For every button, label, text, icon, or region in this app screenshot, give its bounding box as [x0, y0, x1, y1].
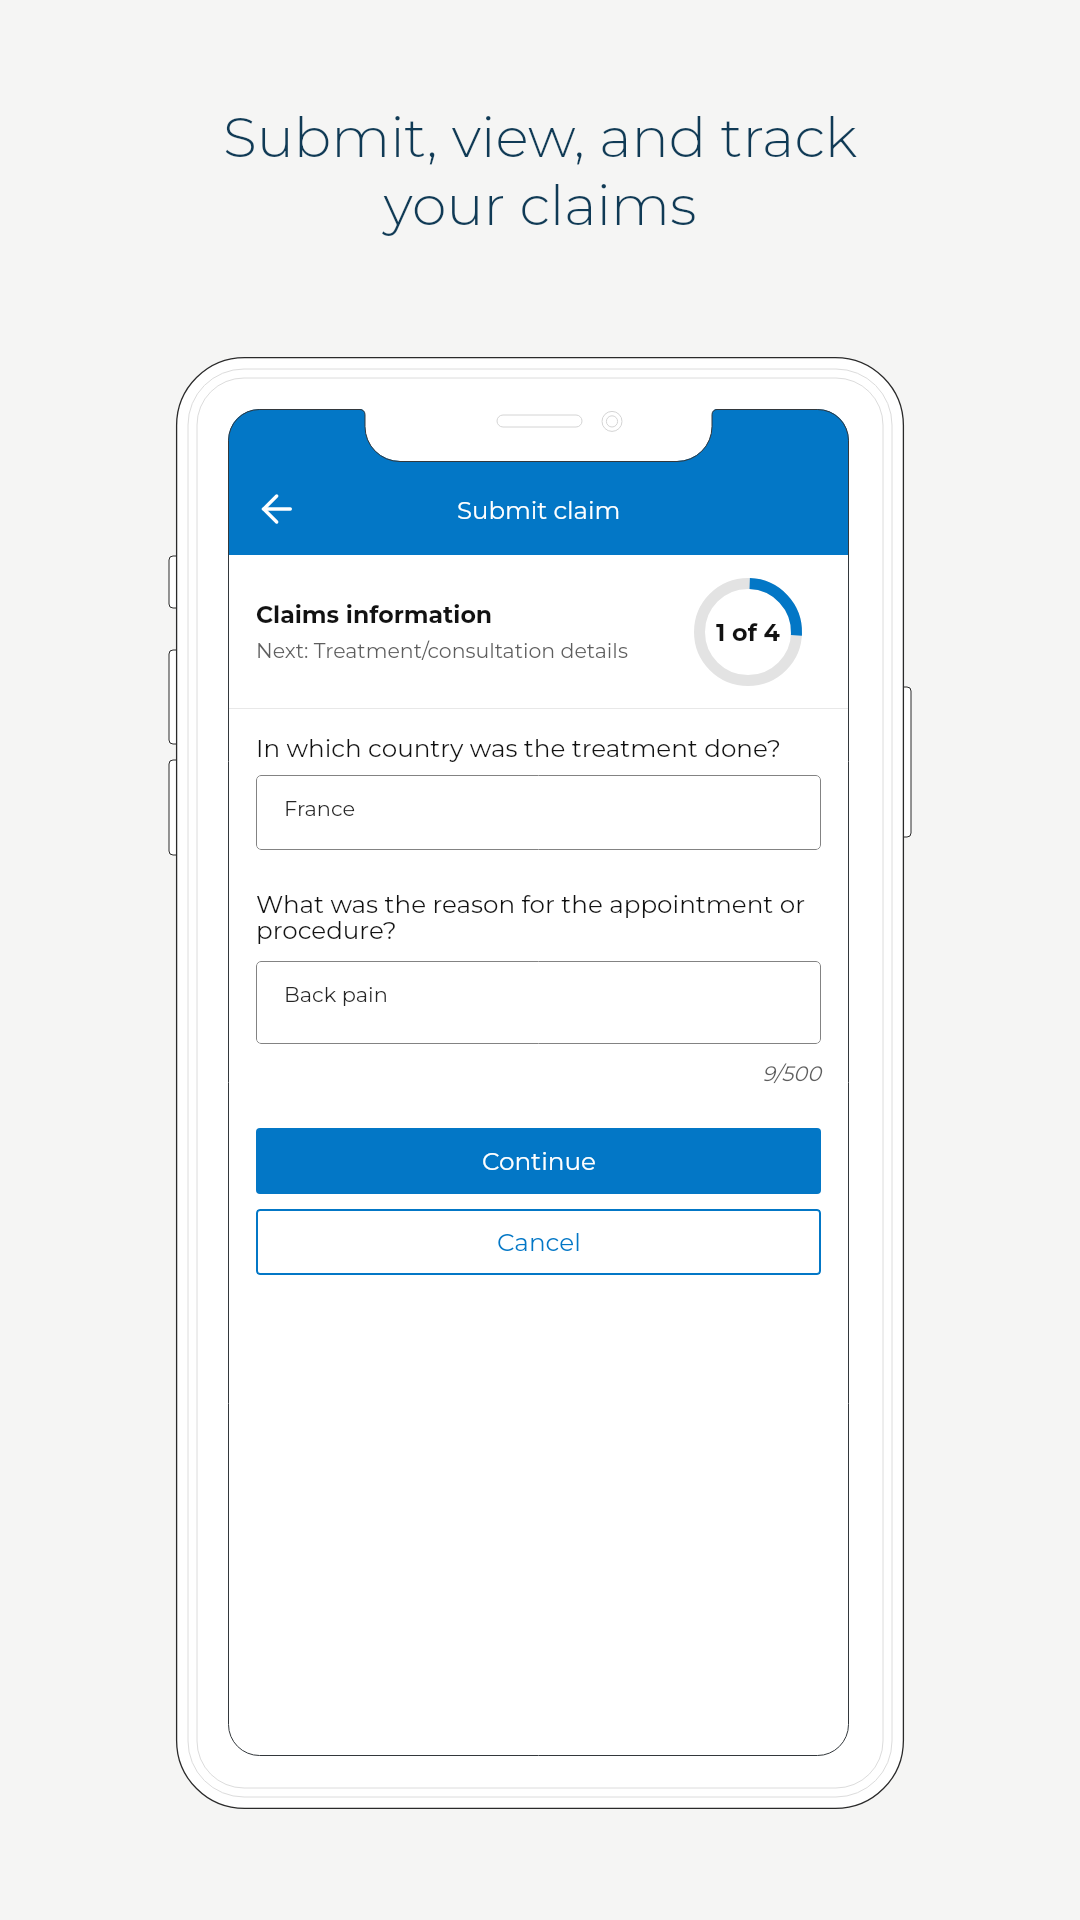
button[interactable]: Back	[245, 477, 309, 541]
button[interactable]: Continue	[256, 1128, 821, 1194]
staticText: Continue	[482, 1146, 596, 1176]
staticText: What was the reason for the appointment …	[256, 889, 821, 945]
staticText: Submit claim	[457, 495, 621, 525]
staticText: Claims information	[256, 600, 493, 629]
staticText: France	[284, 796, 356, 821]
button[interactable]: France	[256, 775, 821, 850]
staticText: Submit, view, and track your claims	[0, 103, 1080, 239]
staticText: Cancel	[497, 1227, 581, 1257]
staticText: In which country was the treatment done?	[256, 733, 781, 763]
staticText: 1 of 4	[716, 618, 780, 647]
button[interactable]: Cancel	[256, 1209, 821, 1275]
staticText: 9/500	[256, 1061, 821, 1086]
staticText: Back pain	[284, 982, 388, 1007]
staticText: Next: Treatment/consultation details	[256, 638, 628, 663]
button[interactable]: Back pain	[256, 961, 821, 1044]
